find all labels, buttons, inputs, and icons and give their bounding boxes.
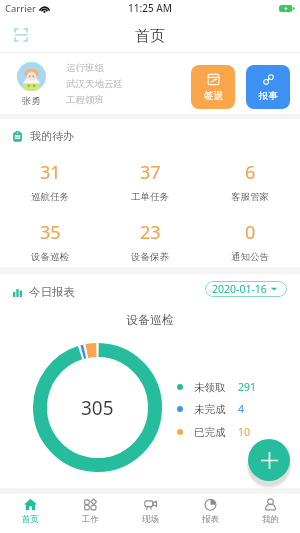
staticText: 我的待办: [30, 129, 74, 143]
staticText: 运行班组: [66, 62, 104, 74]
staticText: 291: [238, 380, 257, 394]
staticText: 设备保养: [131, 251, 169, 263]
staticText: 现场: [142, 514, 159, 525]
staticText: 设备巡检: [31, 251, 69, 263]
button[interactable]: 张勇: [0, 53, 300, 114]
staticText: 工程领班: [66, 94, 104, 106]
staticText: 305: [81, 395, 114, 421]
button[interactable]: 未完成: [177, 402, 245, 416]
button[interactable]: 已完成: [177, 425, 251, 439]
staticText: 今日报表: [29, 285, 75, 299]
button[interactable]: 签退: [191, 65, 235, 109]
button[interactable]: 0: [200, 218, 300, 266]
button[interactable]: Scan QR code: [8, 22, 33, 47]
staticText: 11:25 AM: [128, 1, 172, 15]
button[interactable]: 我的: [240, 494, 300, 533]
staticText: 4: [238, 402, 245, 416]
button[interactable]: 23: [100, 218, 200, 266]
staticText: 10: [238, 425, 251, 439]
staticText: 通知公告: [231, 251, 269, 263]
button[interactable]: 35: [0, 218, 100, 266]
staticText: 31: [40, 160, 61, 185]
button[interactable]: 2020-01-16: [205, 281, 287, 297]
staticText: 我的: [262, 514, 279, 525]
staticText: 巡航任务: [31, 191, 69, 203]
staticText: 首页: [22, 514, 39, 525]
staticText: 35: [40, 220, 61, 245]
staticText: 武汉天地云廷: [66, 78, 123, 90]
button[interactable]: 37: [100, 158, 200, 206]
button[interactable]: 现场: [120, 494, 180, 533]
staticText: 未领取: [194, 381, 226, 394]
staticText: 2020-01-16: [212, 282, 267, 296]
button[interactable]: Add: [248, 439, 290, 481]
staticText: 设备巡检: [0, 312, 300, 327]
staticText: Carrier: [5, 2, 36, 15]
button[interactable]: 工作: [60, 494, 120, 533]
staticText: 工单任务: [131, 191, 169, 203]
staticText: 报表: [202, 514, 219, 525]
button[interactable]: 未领取: [177, 380, 257, 394]
button[interactable]: 6: [200, 158, 300, 206]
staticText: 报事: [259, 90, 278, 102]
button[interactable]: 31: [0, 158, 100, 206]
staticText: 23: [140, 220, 161, 245]
staticText: 6: [245, 160, 256, 185]
staticText: 签退: [204, 90, 223, 102]
button[interactable]: 首页: [0, 494, 60, 533]
staticText: 客服管家: [231, 191, 269, 203]
staticText: 未完成: [194, 403, 226, 416]
staticText: 张勇: [22, 95, 41, 107]
button[interactable]: 报表: [180, 494, 240, 533]
staticText: 37: [140, 160, 161, 185]
staticText: 首页: [135, 27, 165, 46]
staticText: 已完成: [194, 426, 226, 439]
staticText: 工作: [82, 514, 99, 525]
button[interactable]: 报事: [246, 65, 290, 109]
staticText: 0: [245, 220, 256, 245]
